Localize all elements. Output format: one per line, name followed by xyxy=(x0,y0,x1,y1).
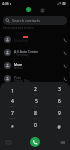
button[interactable]: 9 xyxy=(47,109,70,121)
button[interactable]: Keypad xyxy=(4,138,12,146)
staticText: Search contacts xyxy=(12,18,40,23)
button[interactable]: Profile xyxy=(40,8,45,13)
button[interactable]: 3 xyxy=(47,85,70,97)
staticText: Mobile Mon xyxy=(14,79,30,83)
staticText: MNO xyxy=(56,105,62,108)
staticText: Mobile xyxy=(14,66,23,70)
staticText: ABC xyxy=(33,93,38,96)
staticText: 2 xyxy=(34,86,37,93)
staticText: A.S Auto Centre xyxy=(14,49,39,53)
staticText: DEF xyxy=(57,93,61,96)
button[interactable]: 8 xyxy=(24,109,47,121)
staticText: 7 xyxy=(11,110,14,117)
staticText: 5 xyxy=(35,98,38,105)
button[interactable]: Call xyxy=(30,137,40,147)
button[interactable]: Backspace xyxy=(58,138,66,146)
button[interactable]: A.S Auto Centre xyxy=(0,46,70,59)
button[interactable]: Mum xyxy=(0,59,70,72)
staticText: 3 xyxy=(58,86,61,93)
button[interactable]: Missed call xyxy=(0,33,70,46)
staticText: TUV xyxy=(33,117,38,120)
staticText: Pete xyxy=(14,75,21,79)
button[interactable]: 5 xyxy=(24,97,47,109)
staticText: Mum xyxy=(14,62,23,66)
staticText: JKL xyxy=(34,105,38,108)
staticText: 0 xyxy=(34,122,37,129)
button[interactable]: 2 xyxy=(24,85,47,97)
button[interactable]: 0 xyxy=(24,121,47,133)
staticText: Missed call xyxy=(14,39,28,43)
button[interactable]: Call back xyxy=(60,33,70,46)
staticText: 1 Yesterday xyxy=(14,53,29,57)
staticText: # xyxy=(57,124,61,131)
staticText: 4:36 xyxy=(2,1,9,6)
staticText: 8 xyxy=(34,110,37,117)
button[interactable]: Pete xyxy=(0,72,70,85)
staticText: PQRS xyxy=(9,117,15,120)
staticText: * xyxy=(11,124,14,131)
staticText: 9 xyxy=(58,110,61,117)
button[interactable]: 4 xyxy=(0,97,24,109)
button[interactable]: 7 xyxy=(0,109,24,121)
staticText: 4 xyxy=(11,98,14,105)
staticText: 6 xyxy=(58,98,61,105)
button[interactable]: # xyxy=(47,121,70,133)
button[interactable]: Call back xyxy=(60,59,70,72)
staticText: Favourites and recents xyxy=(3,26,34,30)
staticText: GHI xyxy=(10,105,14,108)
staticText: + xyxy=(35,129,37,132)
button[interactable]: Search contacts xyxy=(3,16,67,25)
button[interactable]: Video call xyxy=(26,7,31,12)
staticText: 1 xyxy=(11,88,14,95)
button[interactable]: 1 xyxy=(0,85,24,97)
button[interactable]: Call back xyxy=(60,72,70,85)
button[interactable]: * xyxy=(0,121,24,133)
button[interactable]: Call back xyxy=(60,46,70,59)
staticText: WXYZ xyxy=(56,117,62,120)
button[interactable]: 6 xyxy=(47,97,70,109)
